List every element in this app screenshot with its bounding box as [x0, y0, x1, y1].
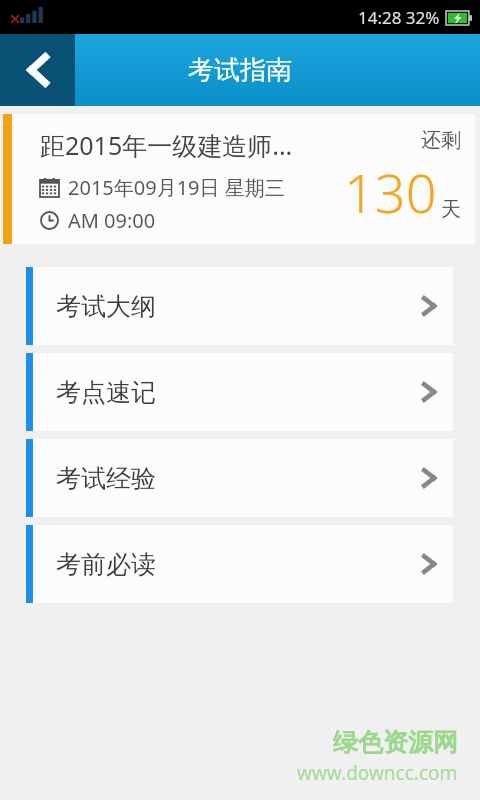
- staticText: 考前必读: [56, 549, 421, 580]
- staticText: 考试大纲: [56, 291, 421, 322]
- button[interactable]: 考前必读: [26, 525, 453, 603]
- button[interactable]: Back: [0, 34, 75, 106]
- button[interactable]: 考点速记: [26, 353, 453, 431]
- staticText: 距2015年一级建造师...: [40, 128, 293, 162]
- staticText: 考试经验: [56, 463, 421, 494]
- staticText: 14:28 32%: [358, 6, 440, 29]
- button[interactable]: 距2015年一级建造师...: [3, 114, 475, 244]
- staticText: 考试指南: [188, 54, 292, 87]
- staticText: AM 09:00: [68, 207, 156, 234]
- staticText: 考点速记: [56, 377, 421, 408]
- staticText: 绿色资源网: [333, 727, 458, 758]
- button[interactable]: 考试大纲: [26, 267, 453, 345]
- staticText: 130: [344, 155, 437, 229]
- staticText: 2015年09月19日 星期三: [68, 174, 285, 201]
- button[interactable]: 考试经验: [26, 439, 453, 517]
- staticText: 天: [441, 197, 461, 222]
- staticText: www.downcc.com: [297, 760, 458, 786]
- staticText: 还剩: [421, 128, 461, 153]
